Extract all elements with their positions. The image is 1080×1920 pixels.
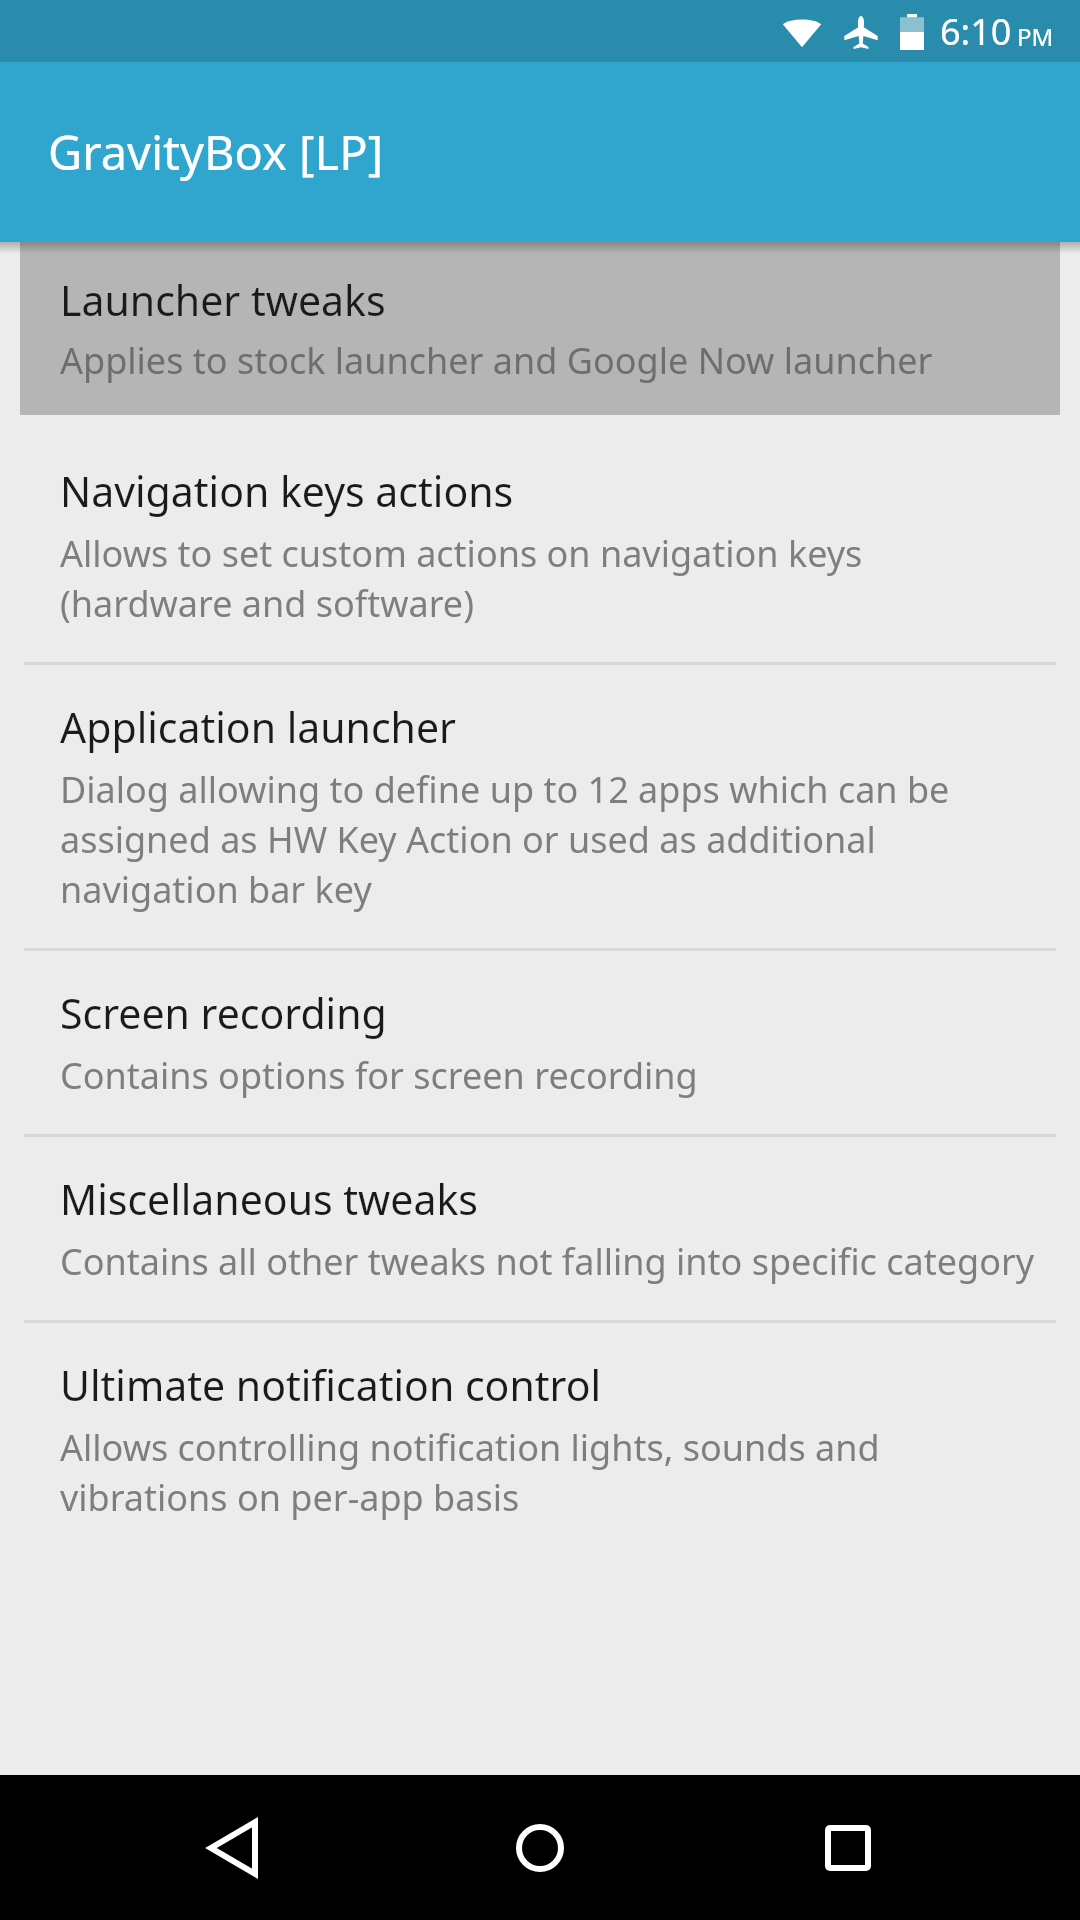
button[interactable]: Ultimate notification control xyxy=(0,1323,1080,1556)
staticText: Allows to set custom actions on navigati… xyxy=(60,529,1040,628)
button[interactable]: Application launcher xyxy=(0,665,1080,948)
staticText: Contains options for screen recording xyxy=(60,1051,698,1100)
staticText: Contains all other tweaks not falling in… xyxy=(60,1237,1035,1286)
button[interactable]: Miscellaneous tweaks xyxy=(0,1137,1080,1320)
staticText: PM xyxy=(1017,20,1054,53)
button[interactable]: Home xyxy=(465,1775,615,1920)
staticText: Allows controlling notification lights, … xyxy=(60,1423,1040,1522)
button[interactable]: Screen recording xyxy=(0,951,1080,1134)
staticText: GravityBox [LP] xyxy=(48,120,384,184)
staticText: Launcher tweaks xyxy=(60,272,386,328)
staticText: Screen recording xyxy=(60,985,387,1041)
staticText: Application launcher xyxy=(60,699,456,755)
button[interactable]: Launcher tweaks xyxy=(20,242,1060,415)
button[interactable]: Back xyxy=(158,1775,308,1920)
staticText: 6:10 xyxy=(940,7,1012,56)
staticText: Dialog allowing to define up to 12 apps … xyxy=(60,765,1040,914)
staticText: Navigation keys actions xyxy=(60,463,514,519)
button[interactable]: Navigation keys actions xyxy=(0,429,1080,662)
button[interactable]: Recent apps xyxy=(773,1775,923,1920)
staticText: Applies to stock launcher and Google Now… xyxy=(60,336,933,385)
staticText: Ultimate notification control xyxy=(60,1357,602,1413)
staticText: Miscellaneous tweaks xyxy=(60,1171,478,1227)
